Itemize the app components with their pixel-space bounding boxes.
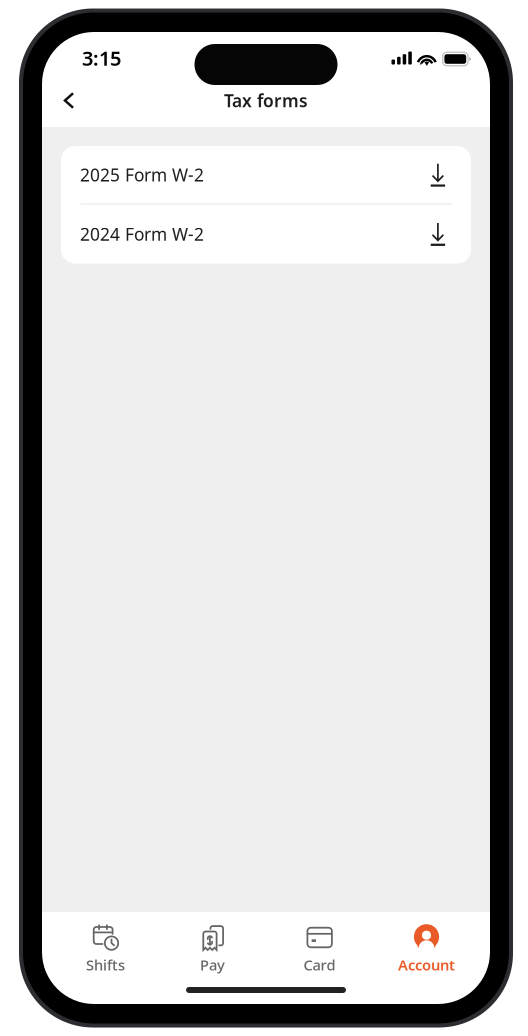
staticText: 2024 Form W-2 [80, 222, 204, 245]
button[interactable]: 2025 Form W-2 [61, 146, 471, 204]
button[interactable]: 2024 Form W-2 [61, 204, 471, 263]
staticText: 2025 Form W-2 [80, 163, 204, 186]
button[interactable]: Pay [159, 923, 266, 974]
staticText: Card [303, 955, 335, 974]
staticText: 3:15 [82, 45, 121, 71]
staticText: Shifts [86, 955, 125, 974]
staticText: Account [398, 955, 455, 974]
button[interactable]: Card [266, 923, 373, 974]
staticText: Pay [200, 955, 225, 974]
staticText: Tax forms [224, 89, 308, 112]
button[interactable]: Account [373, 923, 480, 974]
button[interactable]: Shifts [52, 923, 159, 974]
button[interactable]: Back [47, 78, 91, 122]
